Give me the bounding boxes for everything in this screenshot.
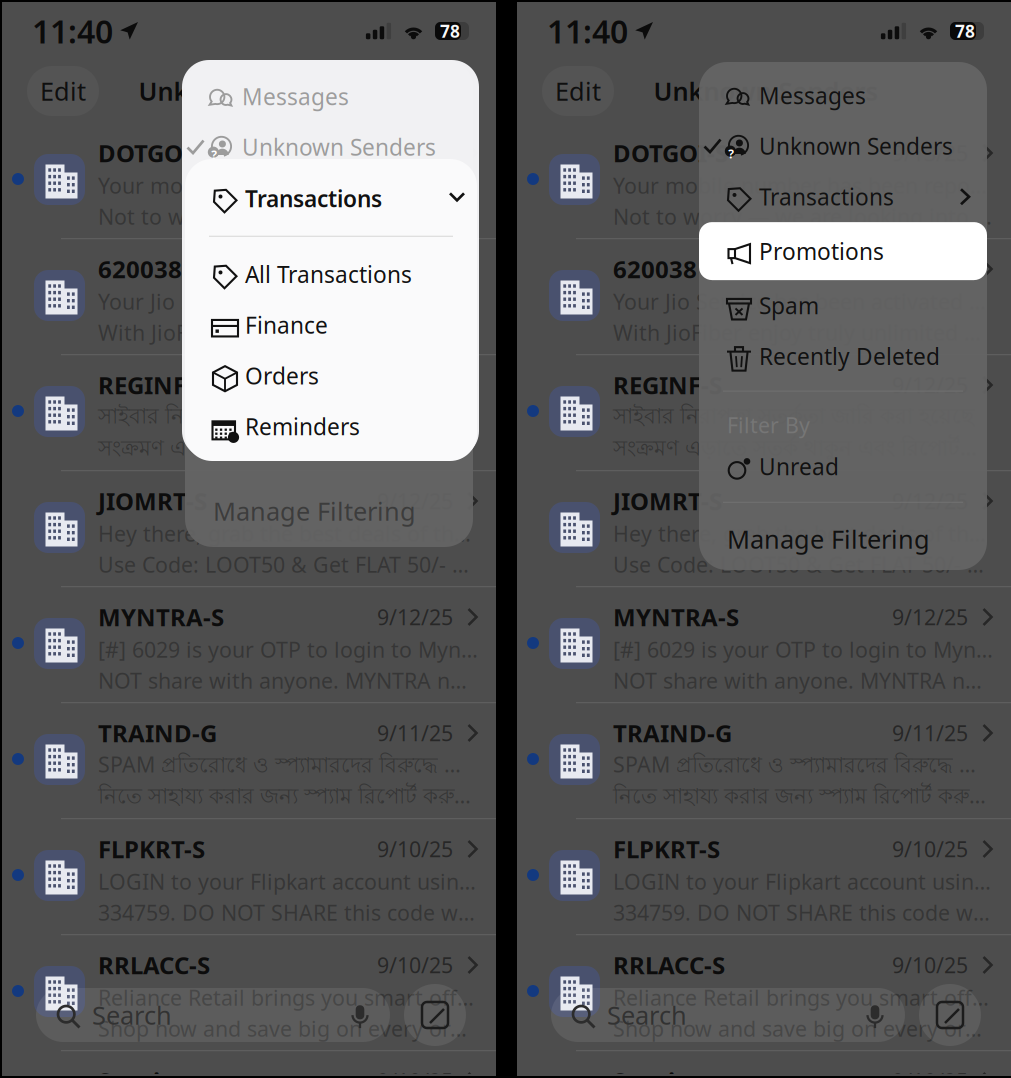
button[interactable]: REGINF-S (517, 354, 1011, 470)
staticText: SPAM প্রতিরোধে ও স্প্যামারদের বিরুদ্ধে ব… (98, 750, 478, 781)
staticText: [#] 6029 is your OTP to login to Myntra.… (98, 635, 478, 664)
staticText: 9/11/25 (892, 719, 968, 747)
staticText: Your mobile number has been reported (613, 171, 993, 200)
button[interactable]: ? (699, 121, 987, 171)
staticText: নিতে সাহায্য করার জন্য স্প্যাম রিপোর্ট ক… (98, 781, 478, 812)
staticText: REGINF-S (98, 369, 207, 401)
button[interactable]: JIOMRT-S (2, 470, 496, 586)
button[interactable]: All Transactions (185, 249, 477, 300)
button[interactable]: Promotions (699, 222, 987, 280)
staticText: ? (728, 146, 734, 162)
button[interactable]: REGINF-S (2, 354, 496, 470)
staticText: Edit (40, 74, 86, 108)
staticText: Edit (555, 74, 601, 108)
button[interactable]: Messages (699, 70, 987, 121)
staticText: Your Jio Service has been activated no… (98, 287, 478, 316)
staticText: MYNTRA-S (613, 601, 739, 633)
staticText: DOTGOI-S (613, 137, 728, 169)
staticText: 9/13/25 (892, 139, 968, 167)
staticText: LOGIN to your Flipkart account using OTP (613, 867, 993, 896)
staticText: Reliance Retail brings you smart offers… (98, 983, 478, 1012)
staticText: Search (607, 998, 687, 1032)
staticText: [#] 6029 is your OTP to login to Myntra.… (613, 635, 993, 664)
button[interactable]: FLPKRT-S (517, 818, 1011, 934)
button[interactable]: Edit (542, 66, 614, 116)
staticText: LOGIN to your Flipkart account using OTP (98, 867, 478, 896)
staticText: Reminders (245, 411, 360, 441)
staticText: 78 (955, 19, 975, 42)
staticText: Hey there, grab the best deals of the da… (98, 519, 478, 548)
button[interactable]: Edit (27, 66, 99, 116)
button[interactable]: Reminders (185, 401, 477, 452)
staticText: 9/13/25 (377, 255, 453, 283)
staticText: Messages (242, 81, 349, 111)
staticText: Unknown Senders (138, 74, 362, 108)
staticText: Hey there, grab the best deals of the da… (613, 519, 993, 548)
button[interactable]: TRAIND-G (517, 702, 1011, 818)
staticText: Recently Deleted (759, 341, 940, 371)
button[interactable]: New message (404, 984, 466, 1046)
staticText: Shop now and save big on every order. Jo… (613, 1014, 993, 1043)
button[interactable]: Messages (182, 71, 479, 122)
staticText: Scenic (98, 1065, 172, 1078)
button[interactable]: Scenic (517, 1050, 1011, 1078)
button[interactable]: 620038 (517, 238, 1011, 354)
staticText: Filter By (727, 411, 810, 439)
button[interactable]: Spam (699, 280, 987, 331)
button[interactable]: FLPKRT-S (2, 818, 496, 934)
staticText: Promotions (759, 236, 884, 266)
staticText: 9/10/25 (377, 1067, 453, 1078)
staticText: Search (92, 998, 172, 1032)
staticText: Unread (759, 451, 839, 481)
staticText: TRAIND-G (613, 717, 732, 749)
staticText: Spam (759, 290, 819, 320)
staticText: Unknown Senders (242, 132, 436, 162)
staticText: Messages (759, 80, 866, 110)
staticText: 9/10/25 (377, 835, 453, 863)
button[interactable]: Recently Deleted (699, 331, 987, 381)
staticText: TRAIND-G (98, 717, 217, 749)
staticText: 9/12/25 (892, 603, 968, 631)
staticText: RRLACC-S (613, 949, 725, 981)
button[interactable]: RRLACC-S (517, 934, 1011, 1050)
button[interactable]: RRLACC-S (2, 934, 496, 1050)
button[interactable]: MYNTRA-S (2, 586, 496, 702)
button[interactable]: Search (551, 988, 905, 1042)
staticText: REGINF-S (613, 369, 722, 401)
button[interactable]: TRAIND-G (2, 702, 496, 818)
button[interactable]: JIOMRT-S (517, 470, 1011, 586)
staticText: With JioFiber enjoy truly unlimited dat… (613, 318, 993, 347)
button[interactable]: Unread (699, 441, 987, 492)
button[interactable]: DOTGOI-S (517, 122, 1011, 238)
button[interactable]: Transactions (699, 171, 987, 222)
button[interactable]: Search (36, 988, 390, 1042)
staticText: RRLACC-S (98, 949, 210, 981)
staticText: DOTGOI-S (98, 137, 213, 169)
button[interactable]: Manage Filtering (699, 503, 987, 575)
button[interactable]: ? (182, 122, 479, 172)
button[interactable]: DOTGOI-S (2, 122, 496, 238)
button[interactable]: Scenic (2, 1050, 496, 1078)
staticText: 11:40 (32, 10, 113, 52)
button[interactable]: New message (919, 984, 981, 1046)
staticText: সংক্রমণ এড়াতে সতর্ক থাকুন এবং রিপোর্ট… (98, 433, 462, 464)
staticText: All Transactions (245, 259, 412, 289)
staticText: Orders (245, 361, 319, 391)
button[interactable]: Finance (185, 300, 477, 350)
staticText: 9/13/25 (892, 255, 968, 283)
button[interactable]: 620038 (2, 238, 496, 354)
button[interactable]: Orders (185, 350, 477, 401)
staticText: 334759. DO NOT SHARE this code with any… (613, 898, 993, 927)
staticText: 620038 (98, 253, 182, 285)
staticText: Shop now and save big on every order. Jo… (98, 1014, 478, 1043)
staticText: 620038 (613, 253, 697, 285)
staticText: JIOMRT-S (613, 485, 722, 517)
staticText: ? (211, 147, 217, 163)
button[interactable]: Transactions (185, 173, 477, 224)
button[interactable]: MYNTRA-S (517, 586, 1011, 702)
staticText: MYNTRA-S (98, 601, 224, 633)
staticText: 9/10/25 (892, 951, 968, 979)
